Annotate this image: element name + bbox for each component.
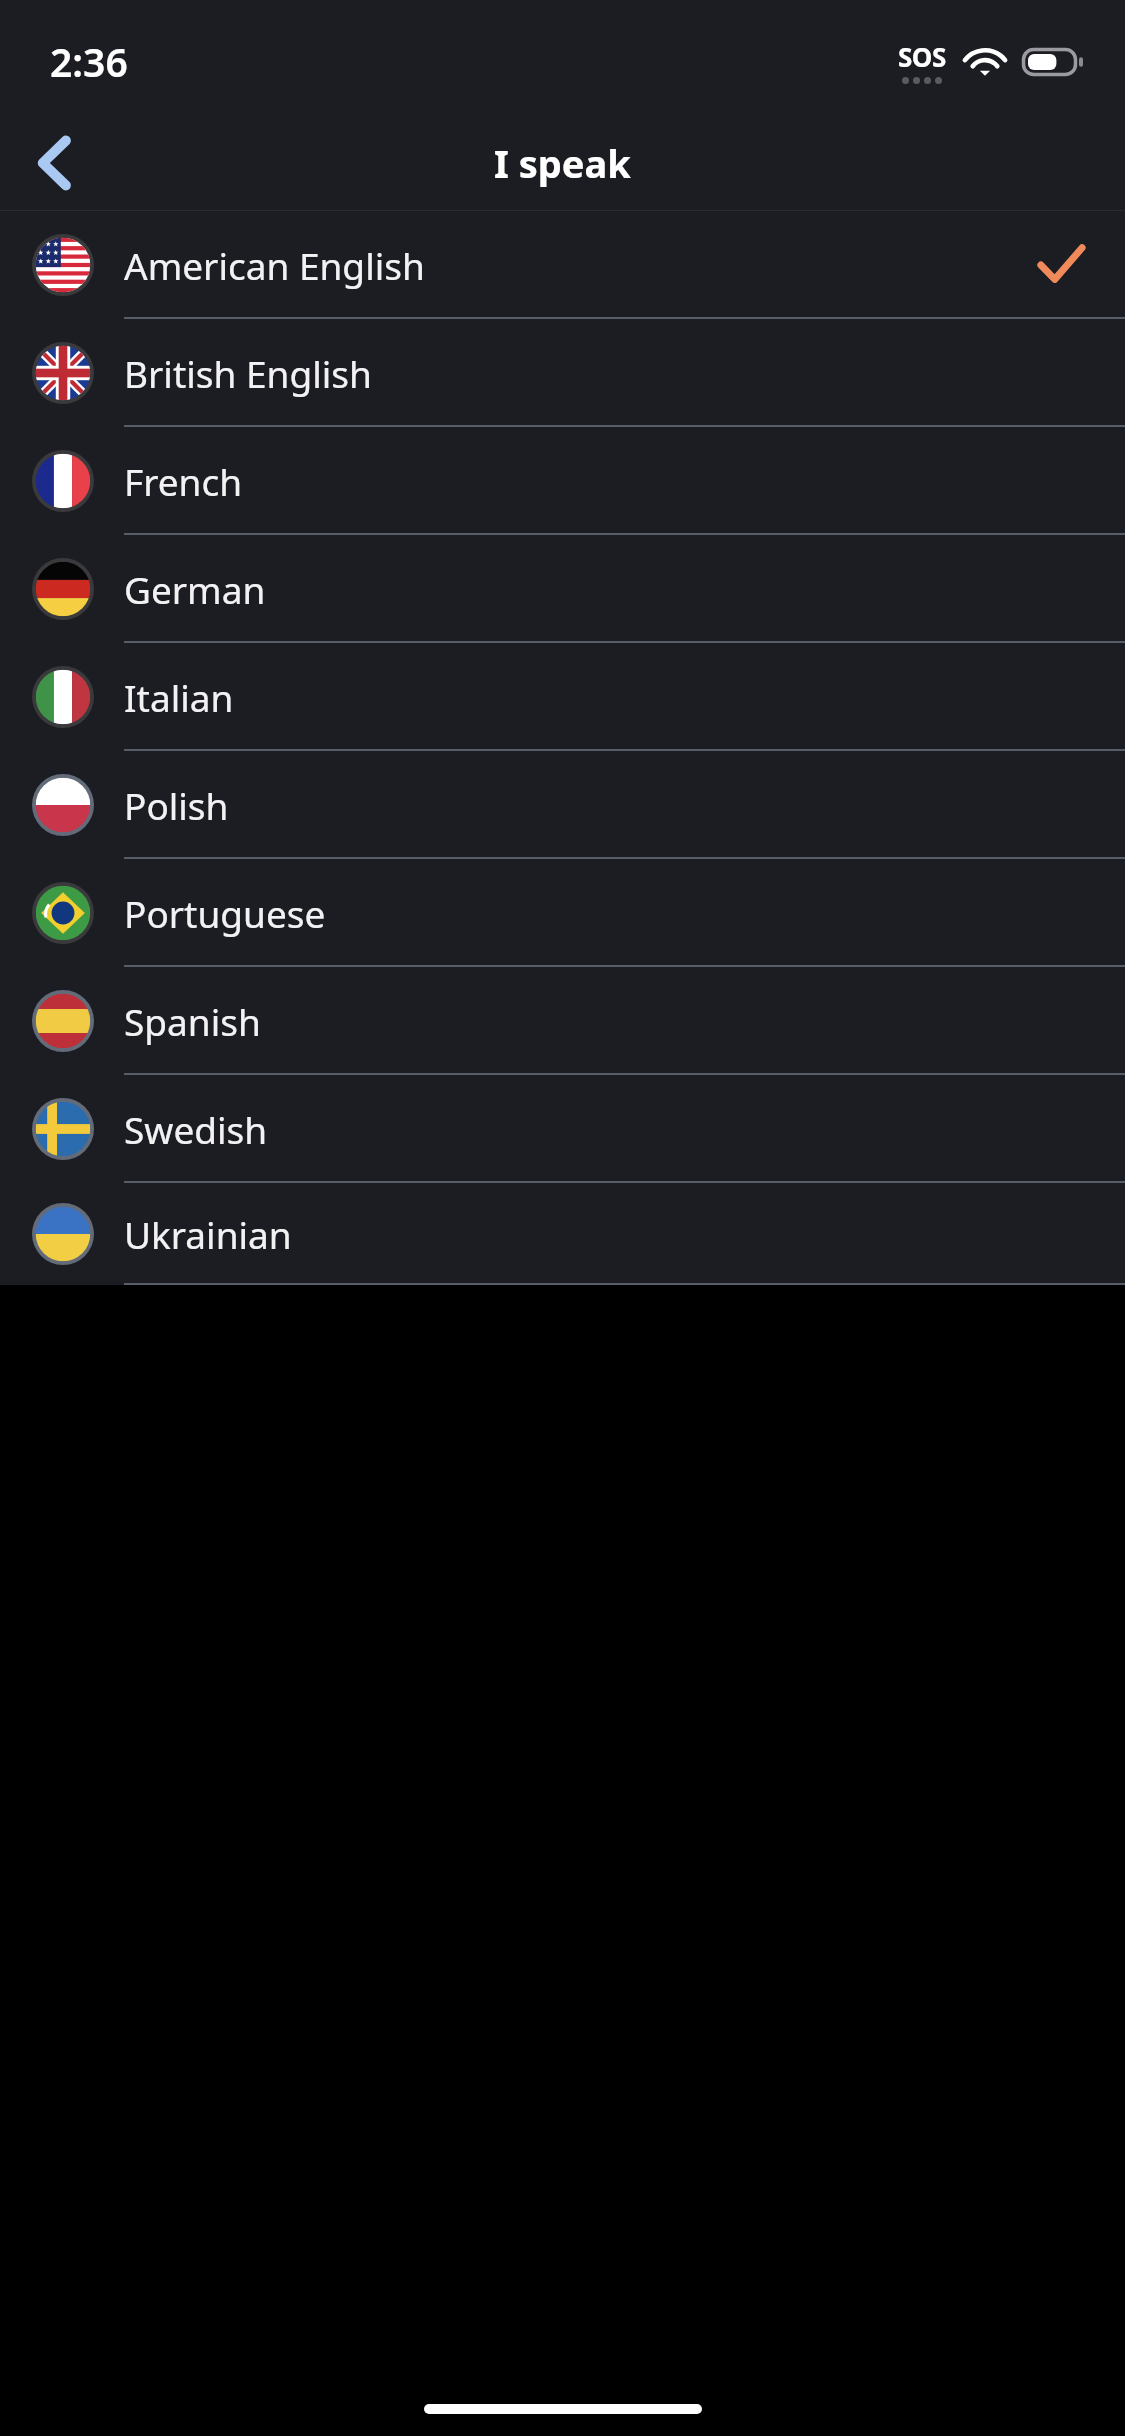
button[interactable]: Ukrainian (0, 1183, 1125, 1285)
staticText: I speak (494, 137, 631, 189)
button[interactable]: French (0, 427, 1125, 535)
staticText: Swedish (124, 1104, 268, 1154)
button[interactable]: German (0, 535, 1125, 643)
staticText: Polish (124, 780, 229, 830)
staticText: British English (124, 348, 372, 398)
staticText: Ukrainian (124, 1209, 292, 1259)
button[interactable]: Back (0, 118, 110, 208)
staticText: 2:36 (50, 35, 128, 88)
button[interactable]: Italian (0, 643, 1125, 751)
staticText: Italian (124, 672, 234, 722)
button[interactable]: British English (0, 319, 1125, 427)
staticText: French (124, 456, 243, 506)
staticText: American English (124, 240, 425, 290)
button[interactable]: Portuguese (0, 859, 1125, 967)
staticText: German (124, 564, 266, 614)
button[interactable]: American English (0, 211, 1125, 319)
staticText: Spanish (124, 996, 261, 1046)
staticText: SOS (898, 39, 946, 74)
staticText: Portuguese (124, 888, 326, 938)
button[interactable]: Swedish (0, 1075, 1125, 1183)
button[interactable]: Spanish (0, 967, 1125, 1075)
button[interactable]: Polish (0, 751, 1125, 859)
